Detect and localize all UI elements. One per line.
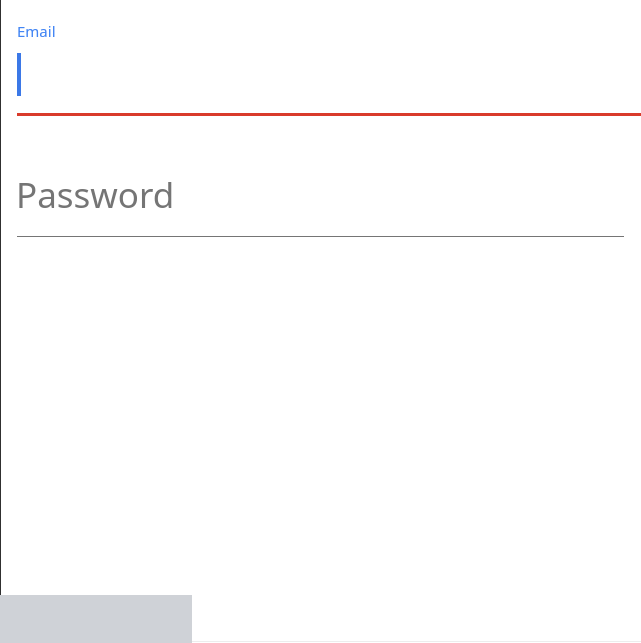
button[interactable]: Email text field (0, 0, 641, 117)
staticText: Email (17, 21, 56, 41)
button[interactable]: Password text field (0, 160, 641, 238)
staticText: Password (16, 171, 175, 219)
